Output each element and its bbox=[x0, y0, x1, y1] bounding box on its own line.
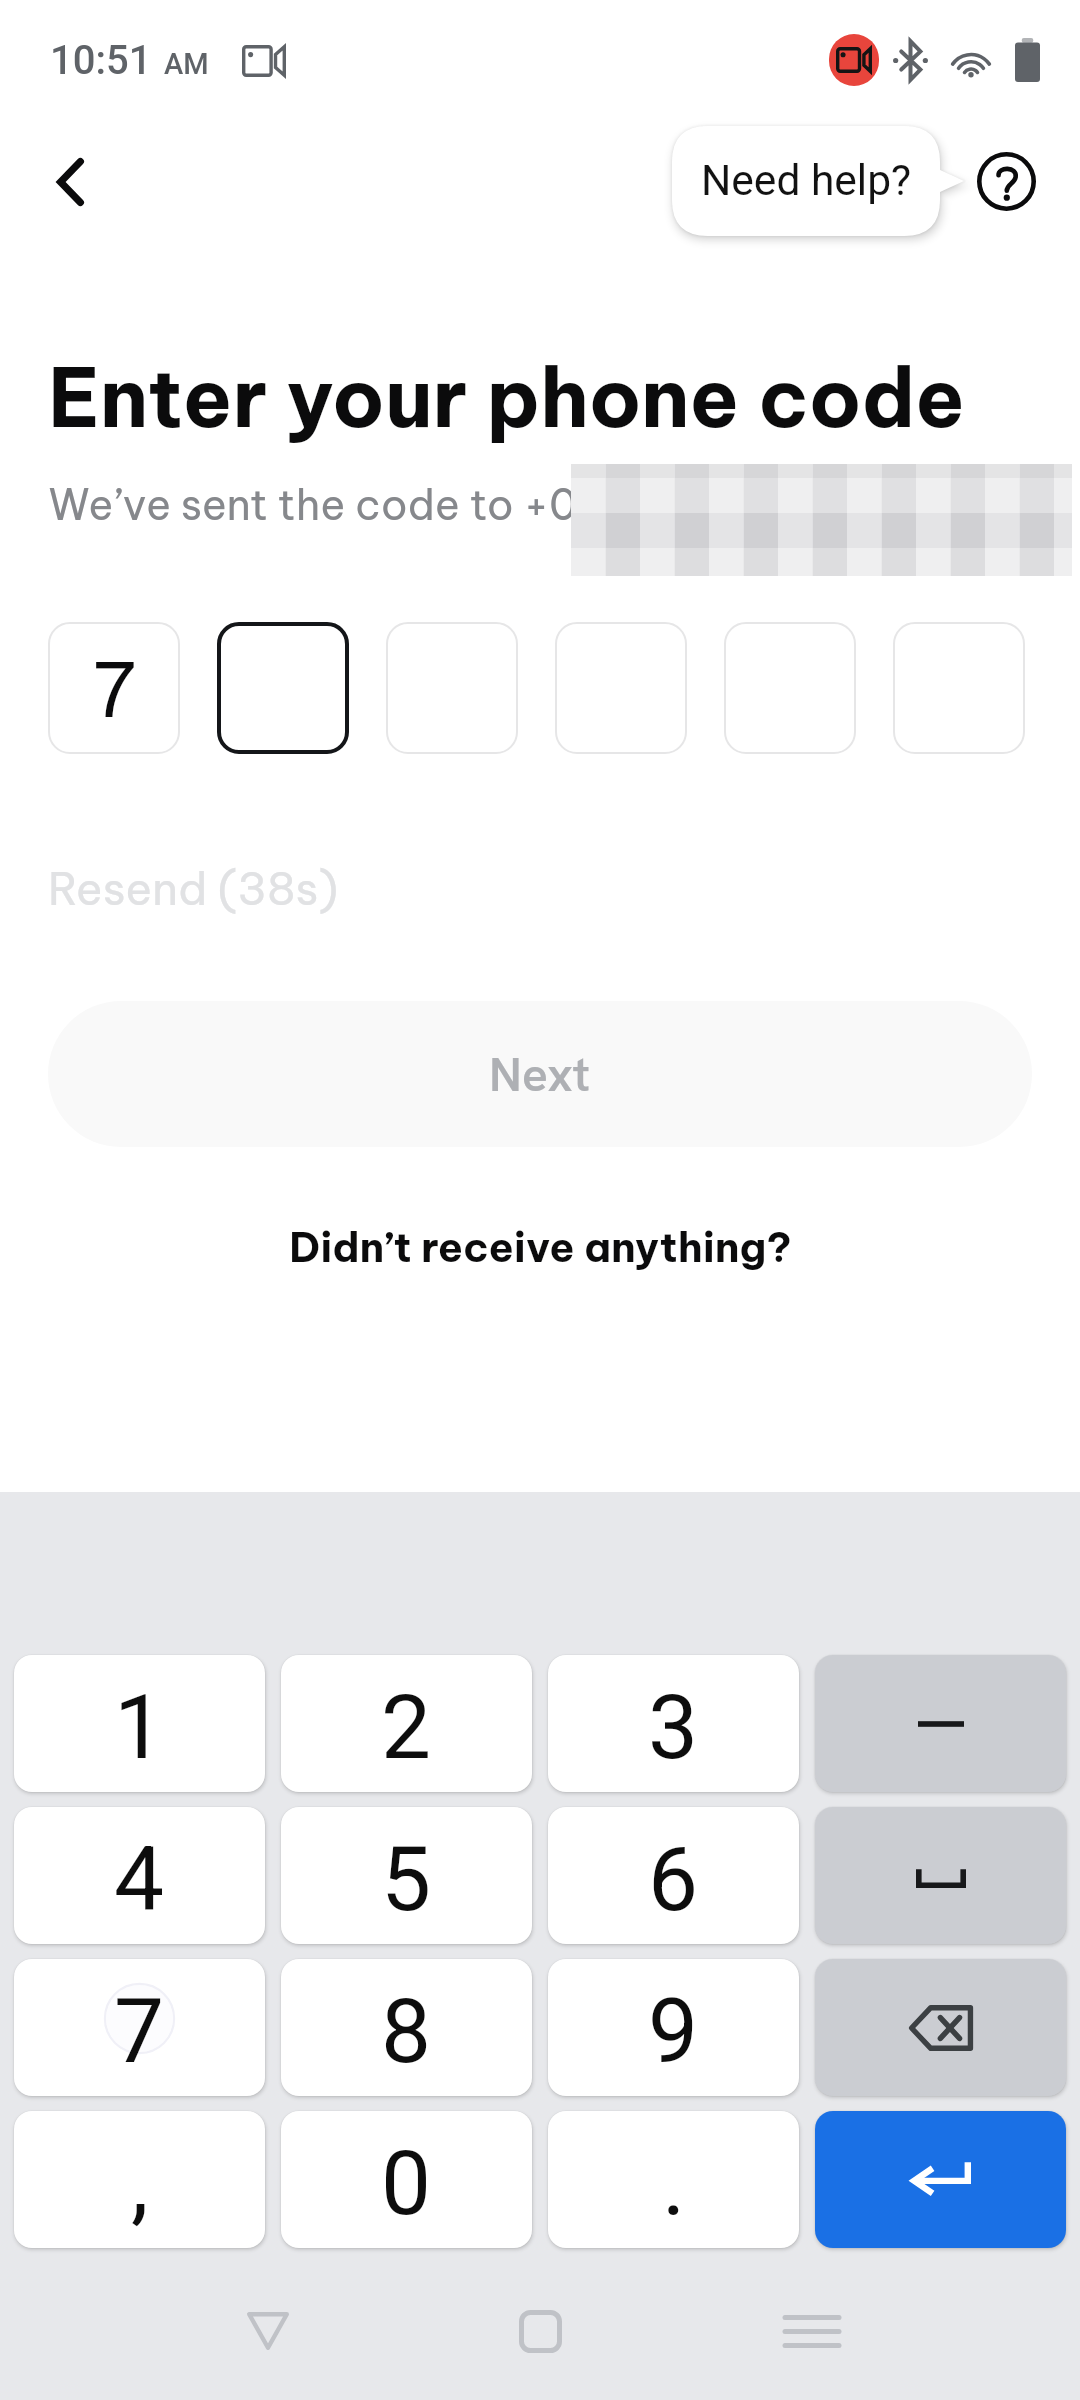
button[interactable]: 8 bbox=[281, 1959, 532, 2096]
button[interactable]: Back bbox=[25, 137, 115, 227]
button[interactable]: Hide keyboard bbox=[208, 2271, 328, 2391]
staticText: 2 bbox=[381, 1675, 432, 1779]
button[interactable] bbox=[893, 622, 1025, 754]
staticText: 1 bbox=[114, 1675, 165, 1779]
staticText: Enter your phone code bbox=[48, 346, 1080, 448]
button[interactable]: 7 bbox=[48, 622, 180, 754]
staticText: . bbox=[662, 2131, 686, 2235]
button[interactable]: 2 bbox=[281, 1655, 532, 1792]
button[interactable]: Enter bbox=[815, 2111, 1066, 2248]
staticText: 7 bbox=[114, 1979, 165, 2083]
button[interactable]: 3 bbox=[548, 1655, 799, 1792]
button[interactable]: 9 bbox=[548, 1959, 799, 2096]
staticText: 10:51 bbox=[50, 37, 152, 84]
staticText: 8 bbox=[381, 1979, 432, 2083]
button[interactable]: Resend (38s) bbox=[48, 860, 339, 917]
button[interactable]: Home bbox=[480, 2271, 600, 2391]
button[interactable]: 5 bbox=[281, 1807, 532, 1944]
button[interactable]: Next bbox=[48, 1001, 1032, 1147]
button[interactable]: , bbox=[14, 2111, 265, 2248]
staticText: Didn’t receive anything? bbox=[289, 1221, 792, 1273]
button[interactable]: Help bbox=[967, 142, 1045, 220]
button[interactable]: Space bbox=[815, 1807, 1066, 1944]
staticText: Next bbox=[489, 1043, 591, 1106]
staticText: 7 bbox=[92, 643, 136, 737]
staticText: Resend (38s) bbox=[48, 860, 339, 917]
staticText: 9 bbox=[648, 1979, 699, 2083]
staticText: 0 bbox=[381, 2131, 432, 2235]
staticText: 5 bbox=[381, 1827, 432, 1931]
button[interactable]: . bbox=[548, 2111, 799, 2248]
button[interactable]: Recent apps bbox=[752, 2271, 872, 2391]
button[interactable]: 4 bbox=[14, 1807, 265, 1944]
button[interactable]: 7 bbox=[14, 1959, 265, 2096]
staticText: Need help? bbox=[701, 156, 912, 206]
button[interactable] bbox=[724, 622, 856, 754]
button[interactable] bbox=[386, 622, 518, 754]
button[interactable]: 0 bbox=[281, 2111, 532, 2248]
staticText: 6 bbox=[648, 1827, 699, 1931]
staticText: 4 bbox=[114, 1827, 165, 1931]
button[interactable]: Backspace bbox=[815, 1959, 1066, 2096]
button[interactable]: 6 bbox=[548, 1807, 799, 1944]
staticText: 3 bbox=[648, 1675, 699, 1779]
staticText: We’ve sent the code to +0 bbox=[48, 478, 578, 531]
button[interactable]: Didn’t receive anything? bbox=[271, 1213, 810, 1281]
staticText: AM bbox=[164, 47, 209, 81]
staticText: , bbox=[131, 2131, 149, 2235]
button[interactable] bbox=[555, 622, 687, 754]
button[interactable]: Need help? bbox=[672, 126, 964, 236]
button[interactable] bbox=[217, 622, 349, 754]
button[interactable]: 1 bbox=[14, 1655, 265, 1792]
button[interactable]: Dash bbox=[815, 1655, 1066, 1792]
